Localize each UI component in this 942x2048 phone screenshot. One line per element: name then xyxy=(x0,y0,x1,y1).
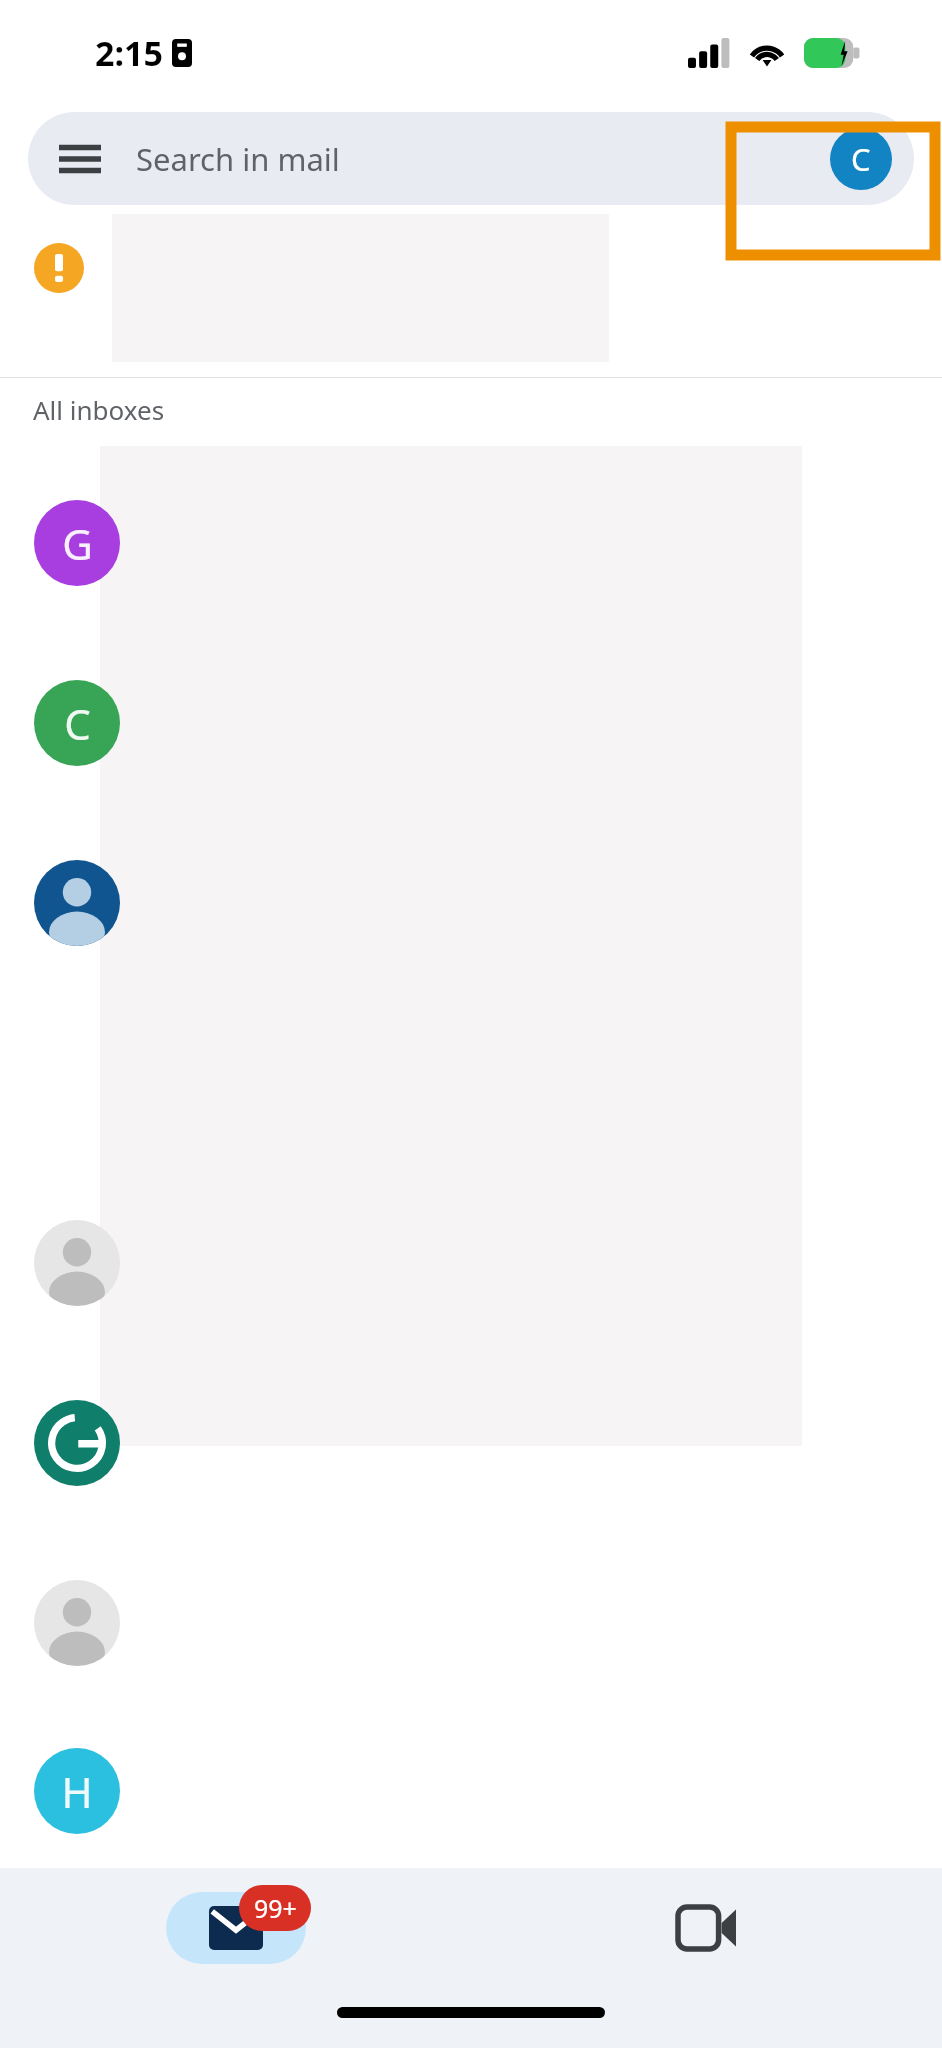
button[interactable]: Open navigation menu xyxy=(50,129,110,189)
button[interactable]: H xyxy=(0,1713,942,1868)
staticText: 2:15 xyxy=(95,30,163,76)
button[interactable] xyxy=(0,1533,942,1713)
button[interactable]: G xyxy=(0,453,942,633)
button[interactable]: C xyxy=(0,633,942,813)
button[interactable]: Open navigation menu xyxy=(28,112,914,205)
staticText: C xyxy=(851,138,871,180)
button[interactable] xyxy=(0,1173,942,1353)
staticText: Search in mail xyxy=(136,138,340,180)
button[interactable]: Mail, 99+ unread xyxy=(0,1868,471,1988)
button[interactable] xyxy=(0,813,942,993)
button[interactable]: Meet xyxy=(471,1868,942,1988)
button[interactable] xyxy=(0,1353,942,1533)
button[interactable]: Warning xyxy=(34,243,84,293)
staticText: 99+ xyxy=(254,1891,297,1925)
button[interactable] xyxy=(0,993,942,1173)
staticText: G xyxy=(62,515,93,572)
staticText: H xyxy=(61,1763,93,1820)
staticText: C xyxy=(64,695,91,752)
staticText: All inboxes xyxy=(33,392,165,427)
button[interactable]: Account xyxy=(830,128,892,190)
